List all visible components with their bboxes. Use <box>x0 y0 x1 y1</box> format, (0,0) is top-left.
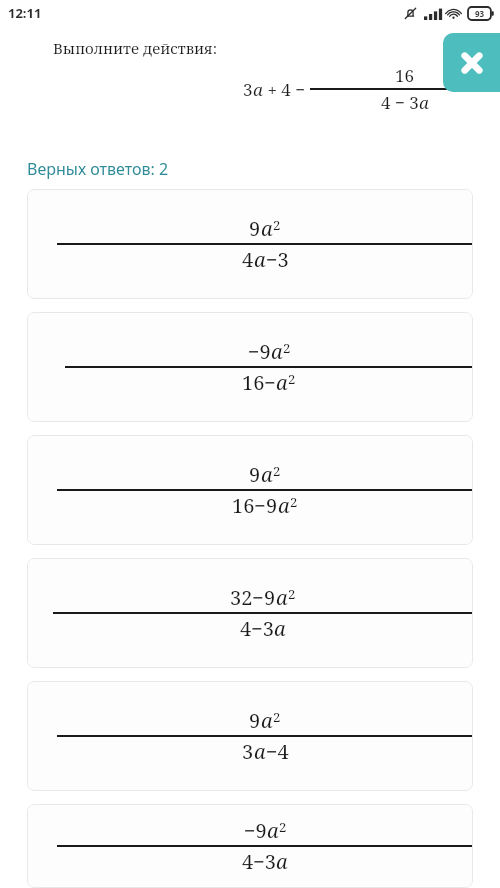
staticText: 16− <box>242 369 276 396</box>
staticText: a <box>261 461 273 488</box>
staticText: a <box>278 492 290 519</box>
button[interactable]: 9 <box>27 435 473 545</box>
staticText: −9 <box>244 817 267 844</box>
staticText: 2 <box>288 585 296 603</box>
button[interactable]: −9 <box>27 312 473 422</box>
staticText: a <box>276 369 288 396</box>
staticText: Верных ответов: 2 <box>27 158 169 180</box>
staticText: a <box>253 78 263 101</box>
staticText: a <box>254 738 266 765</box>
staticText: 2 <box>288 370 296 388</box>
button[interactable]: −9 <box>27 804 473 888</box>
staticText: 9 <box>249 461 261 488</box>
staticText: 4 − 3 <box>381 91 419 114</box>
staticText: + 4 − <box>263 78 310 101</box>
staticText: −9 <box>248 338 271 365</box>
staticText: 2 <box>273 462 281 480</box>
staticText: a <box>419 91 429 114</box>
staticText: 3 <box>242 738 254 765</box>
staticText: 93 <box>475 8 485 19</box>
staticText: 16 <box>395 64 415 87</box>
staticText: 12:11 <box>8 4 42 22</box>
staticText: −3 <box>266 246 289 273</box>
staticText: −4 <box>266 738 289 765</box>
button[interactable]: Close <box>443 33 500 92</box>
button[interactable]: 9 <box>27 681 473 791</box>
staticText: 2 <box>290 493 298 511</box>
staticText: 2 <box>273 708 281 726</box>
staticText: 4−3 <box>242 848 276 875</box>
staticText: a <box>261 215 273 242</box>
staticText: a <box>267 817 279 844</box>
staticText: 4−3 <box>240 615 274 642</box>
staticText: 3 <box>243 78 253 101</box>
staticText: a <box>271 338 283 365</box>
staticText: 16−9 <box>232 492 278 519</box>
staticText: Выполните действия: <box>53 38 217 58</box>
staticText: 2 <box>279 818 287 836</box>
staticText: 4 <box>242 246 254 273</box>
staticText: 2 <box>283 339 291 357</box>
staticText: a <box>254 246 266 273</box>
staticText: 32−9 <box>230 584 276 611</box>
staticText: a <box>276 584 288 611</box>
staticText: 2 <box>273 216 281 234</box>
staticText: a <box>274 615 286 642</box>
staticText: 9 <box>249 707 261 734</box>
staticText: a <box>261 707 273 734</box>
staticText: 9 <box>249 215 261 242</box>
button[interactable]: 32−9 <box>27 558 473 668</box>
staticText: a <box>276 848 288 875</box>
button[interactable]: 9 <box>27 189 473 299</box>
